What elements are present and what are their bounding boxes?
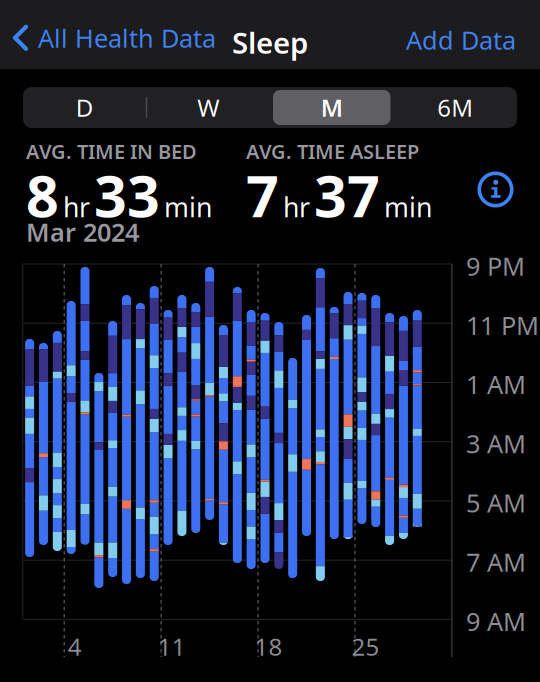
staticText: 9 PM [466, 249, 525, 283]
staticText: 1 AM [466, 367, 526, 401]
staticText: 18 [255, 630, 283, 662]
staticText: AVG. TIME ASLEEP [246, 138, 419, 165]
staticText: 9 AM [466, 604, 526, 638]
button[interactable]: 6M [393, 87, 517, 128]
staticText: 25 [351, 630, 379, 662]
staticText: min [384, 189, 432, 225]
staticText: 37 [314, 157, 380, 233]
staticText: W [197, 92, 219, 123]
staticText: M [321, 92, 343, 123]
staticText: Add Data [406, 23, 516, 57]
staticText: 11 PM [466, 308, 539, 342]
staticText: Mar 2024 [26, 215, 139, 249]
button[interactable]: D [23, 87, 146, 128]
button[interactable]: M [270, 87, 393, 128]
button[interactable]: Add Data [406, 23, 516, 57]
button[interactable] [478, 172, 513, 207]
staticText: D [76, 92, 94, 123]
staticText: 5 AM [466, 486, 526, 519]
staticText: 33 [94, 157, 160, 233]
staticText: AVG. TIME IN BED [26, 138, 197, 165]
button[interactable]: All Health Data [13, 21, 216, 55]
button[interactable]: W [146, 87, 270, 128]
staticText: 4 [68, 630, 82, 662]
staticText: 3 AM [466, 427, 526, 460]
staticText: 7 [246, 157, 279, 233]
staticText: min [164, 189, 212, 225]
staticText: hr [63, 189, 90, 225]
staticText: 8 [26, 157, 59, 233]
staticText: 7 AM [466, 545, 526, 579]
staticText: All Health Data [38, 21, 216, 55]
staticText: Sleep [232, 23, 308, 62]
staticText: 6M [437, 92, 473, 123]
staticText: 11 [158, 630, 186, 662]
staticText: hr [283, 189, 310, 225]
